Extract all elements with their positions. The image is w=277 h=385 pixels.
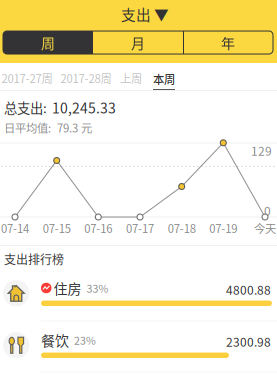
staticText: 10,245.33 xyxy=(52,97,116,118)
button[interactable]: 支出 ▼ xyxy=(100,3,190,25)
staticText: 0 xyxy=(264,202,271,219)
button[interactable]: 年 xyxy=(183,31,273,54)
staticText: 33% xyxy=(86,280,108,296)
staticText: 23% xyxy=(74,332,96,348)
staticText: 餐饮 xyxy=(41,330,69,350)
staticText: 4800.88 xyxy=(226,281,271,298)
staticText: 2017-27周 xyxy=(1,70,52,86)
button[interactable]: 月 xyxy=(93,31,183,54)
staticText: 07-14 xyxy=(1,220,29,236)
staticText: 07-17 xyxy=(126,220,154,236)
button[interactable]: 上周 xyxy=(116,67,146,89)
staticText: 07-19 xyxy=(209,220,237,236)
staticText: 07-16 xyxy=(84,220,112,236)
staticText: 129 xyxy=(251,142,272,159)
button[interactable]: 2017-27周 xyxy=(0,67,56,89)
staticText: 支出排行榜 xyxy=(4,250,64,268)
staticText: 上周 xyxy=(120,70,142,86)
staticText: 日平均值: 79.3 元 xyxy=(4,119,92,136)
staticText: 今天 xyxy=(254,220,276,236)
staticText: 住房 xyxy=(53,278,81,298)
button[interactable]: 餐饮 xyxy=(0,324,277,376)
staticText: 总支出: xyxy=(4,98,47,117)
staticText: 2300.98 xyxy=(226,333,271,350)
button[interactable]: 周 xyxy=(3,31,93,54)
staticText: 07-18 xyxy=(168,220,196,236)
staticText: 2017-28周 xyxy=(60,70,111,86)
staticText: 本周 xyxy=(153,71,175,87)
staticText: 07-15 xyxy=(43,220,71,236)
staticText: 支出 ▼ xyxy=(121,3,169,25)
button[interactable]: 住房 xyxy=(0,272,277,324)
staticText: 周 xyxy=(41,32,55,53)
button[interactable]: 本周 xyxy=(149,67,179,91)
button[interactable]: 2017-28周 xyxy=(57,67,115,89)
staticText: 月 xyxy=(131,32,145,53)
staticText: 年 xyxy=(221,32,235,53)
